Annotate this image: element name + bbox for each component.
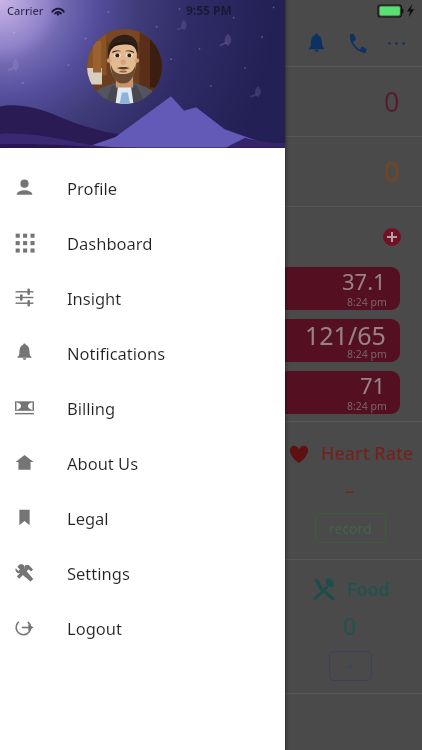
- button[interactable]: More options: [376, 23, 416, 63]
- staticText: 8:24 pm: [347, 347, 387, 361]
- button[interactable]: Heart Rate: [287, 441, 414, 466]
- button[interactable]: 37.1: [92, 267, 400, 310]
- staticText: 37.1: [342, 267, 386, 296]
- button[interactable]: Add food: [329, 651, 372, 681]
- staticText: –: [345, 478, 355, 504]
- staticText: record: [329, 519, 372, 538]
- staticText: 9:55 PM: [186, 2, 232, 18]
- button[interactable]: Call: [336, 23, 376, 63]
- button[interactable]: Dashboard: [0, 215, 285, 270]
- staticText: 0: [384, 153, 400, 190]
- staticText: 71: [360, 371, 386, 400]
- button[interactable]: Notifications: [0, 325, 285, 380]
- button[interactable]: About Us: [0, 435, 285, 490]
- button[interactable]: record: [315, 513, 386, 543]
- staticText: Billing: [67, 397, 116, 419]
- button[interactable]: 71: [92, 371, 400, 414]
- staticText: Heart Rate: [321, 441, 414, 466]
- staticText: 8:24 pm: [347, 399, 387, 413]
- staticText: Profile: [67, 177, 117, 199]
- staticText: 8:24 pm: [347, 295, 387, 309]
- staticText: 121/65: [305, 319, 386, 352]
- button[interactable]: Meds: [22, 137, 400, 206]
- staticText: Sleep: [22, 87, 76, 116]
- button[interactable]: Billing: [0, 380, 285, 435]
- button[interactable]: Insight: [0, 270, 285, 325]
- button[interactable]: Settings: [0, 545, 285, 600]
- staticText: About Us: [67, 452, 139, 474]
- button[interactable]: Food: [311, 576, 390, 602]
- button[interactable]: Sleep: [22, 67, 400, 136]
- staticText: Notifications: [67, 342, 166, 364]
- staticText: Meds: [22, 157, 76, 186]
- staticText: Legal: [67, 507, 109, 529]
- button[interactable]: 121/65: [92, 319, 400, 362]
- staticText: Food: [347, 577, 390, 602]
- button[interactable]: Logout: [0, 600, 285, 655]
- staticText: Carrier: [7, 3, 44, 18]
- staticText: Insight: [67, 287, 122, 309]
- staticText: +: [346, 656, 355, 676]
- button[interactable]: Add vital: [383, 228, 401, 246]
- staticText: 0: [343, 610, 357, 641]
- staticText: Logout: [67, 617, 122, 639]
- button[interactable]: Profile: [0, 160, 285, 215]
- staticText: Settings: [67, 562, 130, 584]
- staticText: Dashboard: [67, 232, 153, 254]
- button[interactable]: Legal: [0, 490, 285, 545]
- button[interactable]: Notifications: [296, 23, 336, 63]
- staticText: 0: [384, 83, 400, 120]
